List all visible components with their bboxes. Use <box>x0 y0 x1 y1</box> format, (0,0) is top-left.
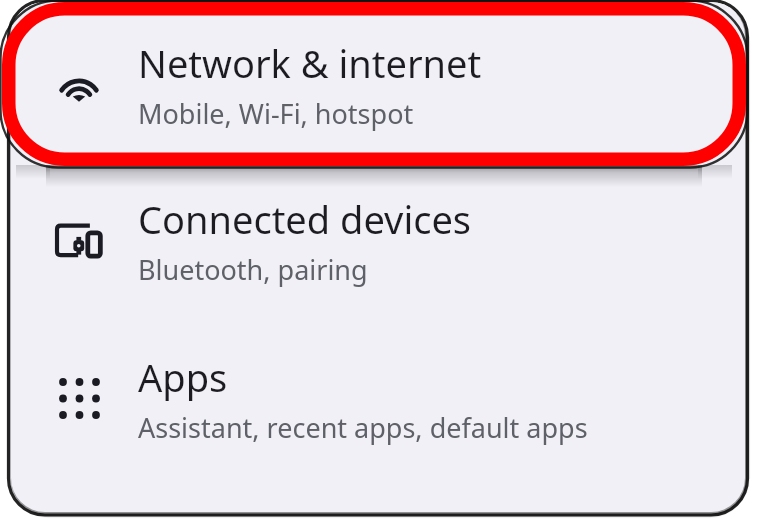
other: Connected devices <box>53 214 105 266</box>
staticText: Apps <box>138 351 228 403</box>
staticText: Mobile, Wi-Fi, hotspot <box>138 95 414 132</box>
staticText: Bluetooth, pairing <box>138 251 368 288</box>
other: Apps <box>53 372 105 424</box>
staticText: Network & internet <box>138 37 482 89</box>
staticText: Assistant, recent apps, default apps <box>138 409 588 446</box>
button[interactable]: Connected devices <box>11 181 745 299</box>
staticText: Connected devices <box>138 193 472 245</box>
other: Network and internet <box>53 58 105 110</box>
button[interactable]: Apps <box>11 339 745 457</box>
button[interactable]: Network and internet <box>11 24 745 144</box>
other: Highlighted: Network & internet <box>0 0 760 528</box>
